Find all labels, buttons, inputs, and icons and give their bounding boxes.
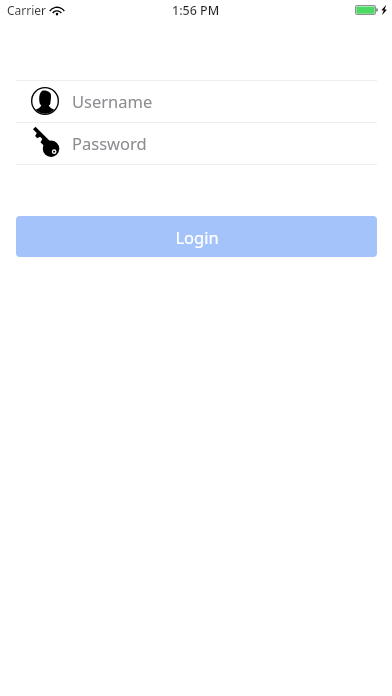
staticText: Username (72, 90, 153, 112)
staticText: Carrier (7, 2, 47, 18)
button[interactable]: Login (16, 216, 377, 257)
other: Password (31, 129, 59, 157)
staticText: Password (72, 132, 147, 154)
button[interactable]: Password (0, 123, 392, 164)
button[interactable]: User (0, 81, 392, 122)
staticText: 1:56 PM (172, 2, 220, 19)
staticText: Login (175, 226, 219, 248)
other: User (31, 87, 59, 115)
